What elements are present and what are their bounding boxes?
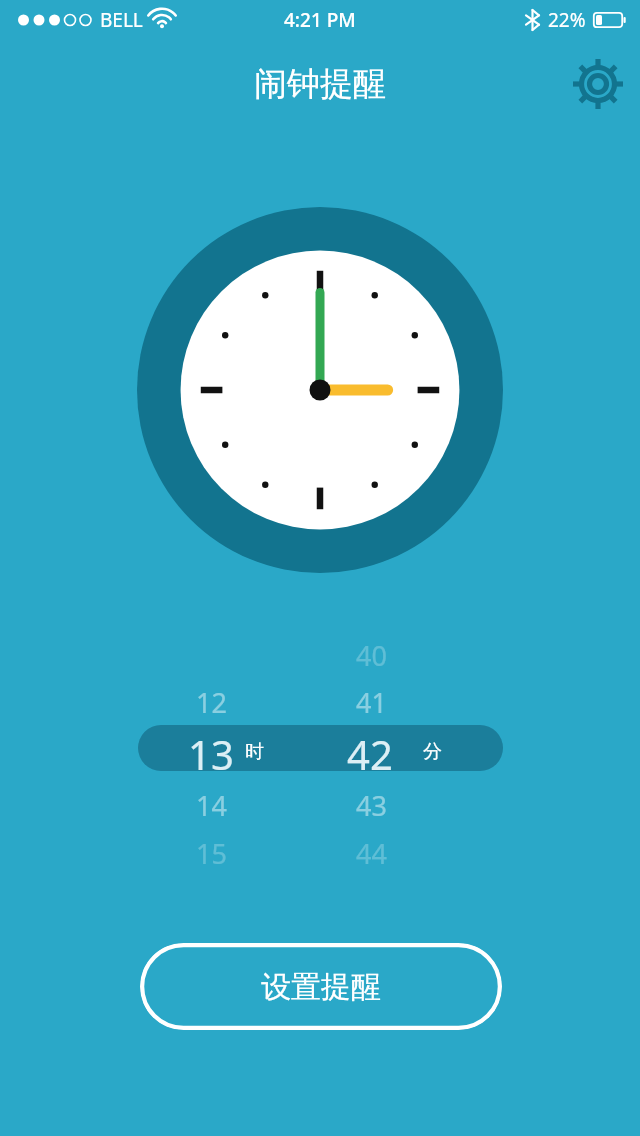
- button[interactable]: 设置提醒: [140, 943, 502, 1030]
- staticText: 时: [245, 740, 264, 764]
- staticText: 设置提醒: [261, 968, 381, 1006]
- staticText: BELL: [100, 7, 143, 33]
- staticText: 15: [196, 835, 227, 872]
- button[interactable]: Settings: [570, 56, 626, 112]
- staticText: 22%: [548, 7, 586, 33]
- staticText: 13: [188, 727, 234, 781]
- staticText: 44: [356, 835, 387, 872]
- staticText: 闹钟提醒: [254, 63, 386, 105]
- staticText: 41: [356, 684, 387, 721]
- staticText: 42: [347, 727, 393, 781]
- staticText: 4:21 PM: [284, 7, 356, 33]
- button[interactable]: [138, 725, 503, 771]
- staticText: 43: [356, 787, 387, 824]
- staticText: 14: [196, 787, 227, 824]
- staticText: 12: [196, 684, 227, 721]
- staticText: 分: [423, 740, 442, 764]
- staticText: 40: [356, 637, 387, 674]
